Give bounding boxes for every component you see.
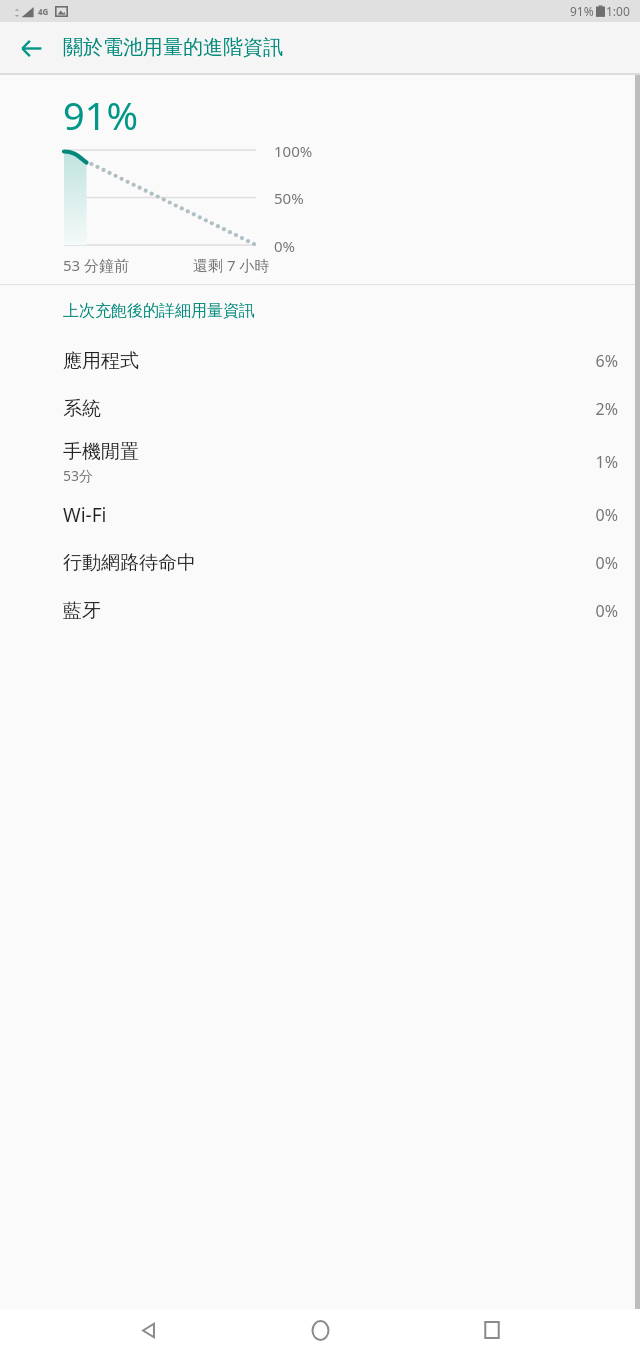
staticText: 0% — [274, 236, 296, 256]
staticText: 還剩 7 小時 — [193, 255, 270, 275]
staticText: 1:00 — [606, 3, 630, 19]
staticText: 藍牙 — [63, 599, 101, 623]
staticText: 關於電池用量的進階資訊 — [63, 35, 283, 60]
staticText: 100% — [274, 141, 313, 161]
staticText: 91% — [570, 3, 594, 19]
button[interactable]: Recent apps — [468, 1309, 516, 1351]
staticText: 1% — [595, 451, 618, 473]
staticText: 上次充飽後的詳細用量資訊 — [63, 301, 255, 321]
staticText: 53 分鐘前 — [63, 255, 130, 275]
button[interactable]: Back — [124, 1309, 172, 1351]
button[interactable]: Wi-Fi — [0, 491, 640, 539]
staticText: 0% — [595, 504, 618, 526]
staticText: 應用程式 — [63, 349, 139, 373]
button[interactable]: 上次充飽後的詳細用量資訊 — [0, 285, 640, 337]
staticText: 行動網路待命中 — [63, 551, 196, 575]
staticText: 6% — [595, 350, 618, 372]
staticText: Wi-Fi — [63, 502, 107, 528]
staticText: 0% — [595, 600, 618, 622]
button[interactable]: 系統 — [0, 385, 640, 433]
staticText: 50% — [274, 188, 304, 208]
staticText: 2% — [595, 398, 618, 420]
staticText: 53分 — [63, 466, 94, 485]
staticText: 手機閒置 — [63, 440, 139, 464]
button[interactable]: Home — [296, 1309, 344, 1351]
button[interactable]: 行動網路待命中 — [0, 539, 640, 587]
button[interactable]: 應用程式 — [0, 337, 640, 385]
staticText: 系統 — [63, 397, 101, 421]
button[interactable]: 藍牙 — [0, 587, 640, 635]
staticText: 91% — [63, 89, 139, 141]
button[interactable]: 手機閒置 — [0, 433, 640, 491]
staticText: 0% — [595, 552, 618, 574]
button[interactable]: Back — [10, 27, 52, 69]
staticText: 4G — [38, 6, 49, 17]
